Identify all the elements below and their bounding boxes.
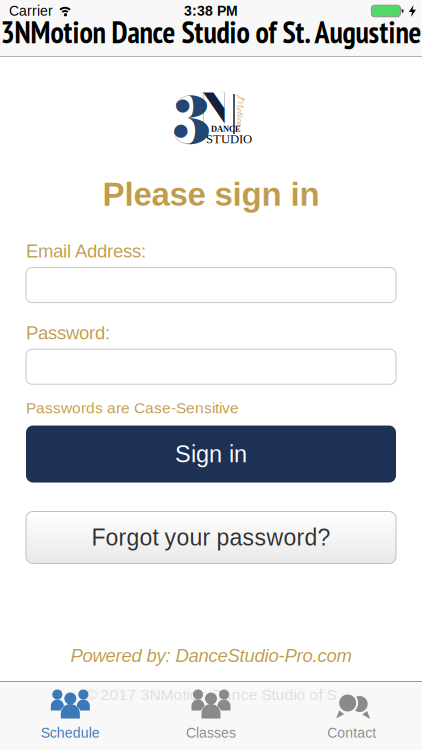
staticText: Contact xyxy=(327,725,376,741)
staticText: Passwords are Case-Sensitive xyxy=(26,399,239,416)
staticText: Classes xyxy=(186,725,236,741)
staticText: 3NMotion Dance Studio of St. Augustine xyxy=(0,13,421,51)
staticText: N xyxy=(198,77,229,138)
staticText: Forgot your password? xyxy=(91,525,330,550)
button[interactable]: Powered by: DanceStudio-Pro.com xyxy=(70,645,351,666)
staticText: 3 xyxy=(172,73,211,169)
button[interactable]: Classes xyxy=(141,682,281,741)
button[interactable]: Forgot your password? xyxy=(26,511,396,563)
staticText: Carrier xyxy=(9,3,53,19)
staticText: Schedule xyxy=(41,725,100,741)
staticText: Password: xyxy=(26,322,110,343)
staticText: Powered by: DanceStudio-Pro.com xyxy=(70,645,351,666)
button[interactable]: Schedule xyxy=(0,682,141,741)
staticText: © 2017 3NMotion Dance Studio of S xyxy=(85,686,336,703)
staticText: Email Address: xyxy=(26,241,146,262)
staticText: DANCE xyxy=(211,124,241,134)
staticText: Please sign in xyxy=(102,176,319,213)
staticText: Motion xyxy=(223,103,255,118)
button[interactable]: Password xyxy=(26,349,396,384)
staticText: Sign in xyxy=(175,441,247,467)
button[interactable]: Sign in xyxy=(26,425,396,482)
button[interactable]: Contact xyxy=(281,682,422,741)
staticText: 3:38 PM xyxy=(184,3,238,19)
staticText: STUDIO xyxy=(206,132,252,146)
